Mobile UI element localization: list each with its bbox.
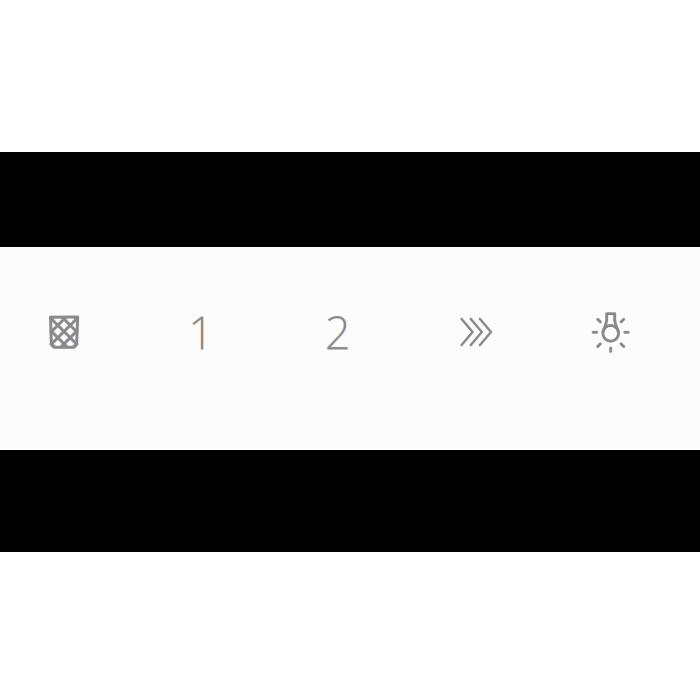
- button[interactable]: Delicates: [0, 247, 132, 450]
- staticText: 1: [188, 302, 214, 362]
- button[interactable]: Fast spin: [404, 247, 540, 450]
- button[interactable]: Programme 1: [132, 247, 268, 450]
- staticText: 2: [325, 302, 351, 362]
- button[interactable]: Drum light: [540, 247, 700, 450]
- button[interactable]: Programme 2: [268, 247, 404, 450]
